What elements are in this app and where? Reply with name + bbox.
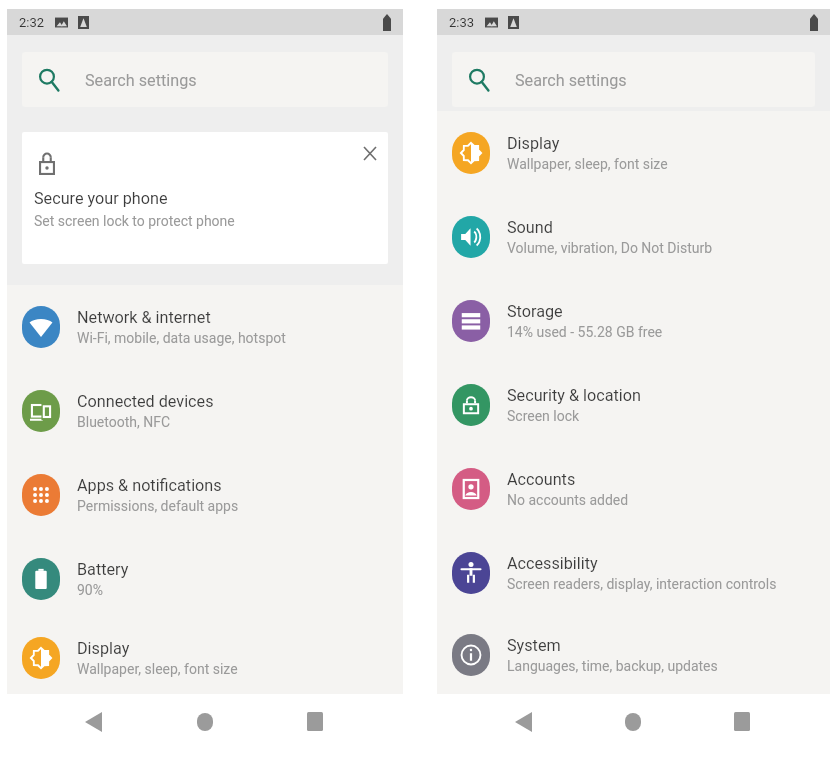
button[interactable]: Accounts [437,447,830,531]
staticText: Screen lock [507,408,580,424]
button[interactable]: Home [165,694,244,749]
staticText: Wallpaper, sleep, font size [507,156,668,172]
button[interactable]: Display [7,621,403,694]
staticText: 2:32 [19,15,45,30]
staticText: Languages, time, backup, updates [507,658,718,674]
staticText: Search settings [85,71,197,90]
button[interactable]: Network & internet [7,285,403,369]
staticText: Display [77,639,130,658]
staticText: Accounts [507,470,576,489]
staticText: Bluetooth, NFC [77,414,171,430]
staticText: No accounts added [507,492,629,508]
button[interactable]: Back [85,694,165,749]
button[interactable]: Secure your phone [22,132,388,264]
staticText: Screen readers, display, interaction con… [507,576,777,592]
button[interactable]: Recents [244,694,323,749]
staticText: Wi-Fi, mobile, data usage, hotspot [77,330,286,346]
staticText: Sound [507,218,553,237]
button[interactable]: Sound [437,195,830,279]
staticText: Display [507,134,560,153]
staticText: System [507,636,561,655]
staticText: Secure your phone [34,189,168,208]
staticText: Search settings [515,71,627,90]
staticText: Volume, vibration, Do Not Disturb [507,240,713,256]
staticText: 90% [77,582,103,598]
staticText: Accessibility [507,554,598,573]
button[interactable]: Battery [7,537,403,621]
button[interactable]: Dismiss [355,138,385,168]
staticText: 2:33 [449,15,475,30]
button[interactable]: Display [437,111,830,195]
button[interactable]: Search settings [22,52,388,107]
staticText: Security & location [507,386,641,405]
staticText: Apps & notifications [77,476,222,495]
button[interactable]: Search settings [452,52,815,107]
button[interactable]: Back [515,694,594,749]
button[interactable]: Apps & notifications [7,453,403,537]
staticText: Storage [507,302,563,321]
button[interactable]: Security & location [437,363,830,447]
button[interactable]: Home [594,694,672,749]
staticText: Battery [77,560,129,579]
button[interactable]: Connected devices [7,369,403,453]
staticText: Network & internet [77,308,211,327]
staticText: 14% used - 55.28 GB free [507,324,663,340]
button[interactable]: System [437,615,830,694]
button[interactable]: Accessibility [437,531,830,615]
staticText: Set screen lock to protect phone [34,213,235,229]
staticText: Permissions, default apps [77,498,239,514]
button[interactable]: Storage [437,279,830,363]
button[interactable]: Recents [672,694,750,749]
staticText: Wallpaper, sleep, font size [77,661,238,677]
staticText: Connected devices [77,392,214,411]
